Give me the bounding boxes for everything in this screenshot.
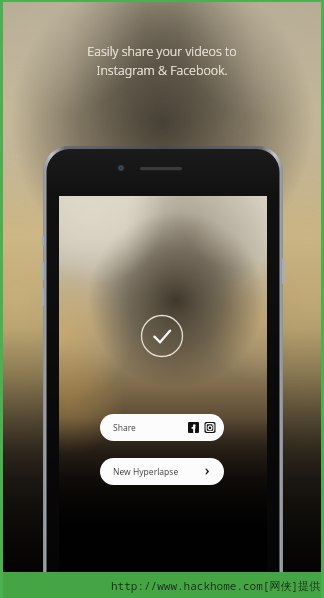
staticText: Easily share your videos to Instagram & … xyxy=(87,43,237,79)
staticText: Share xyxy=(113,422,136,434)
staticText: http://www.hackhome.com[网侠]提供 xyxy=(111,578,320,593)
staticText: New Hyperlapse xyxy=(113,466,179,478)
button[interactable]: Share xyxy=(100,414,224,441)
button[interactable]: New Hyperlapse xyxy=(100,458,224,485)
other: Share to Facebook and Instagram xyxy=(188,422,215,433)
